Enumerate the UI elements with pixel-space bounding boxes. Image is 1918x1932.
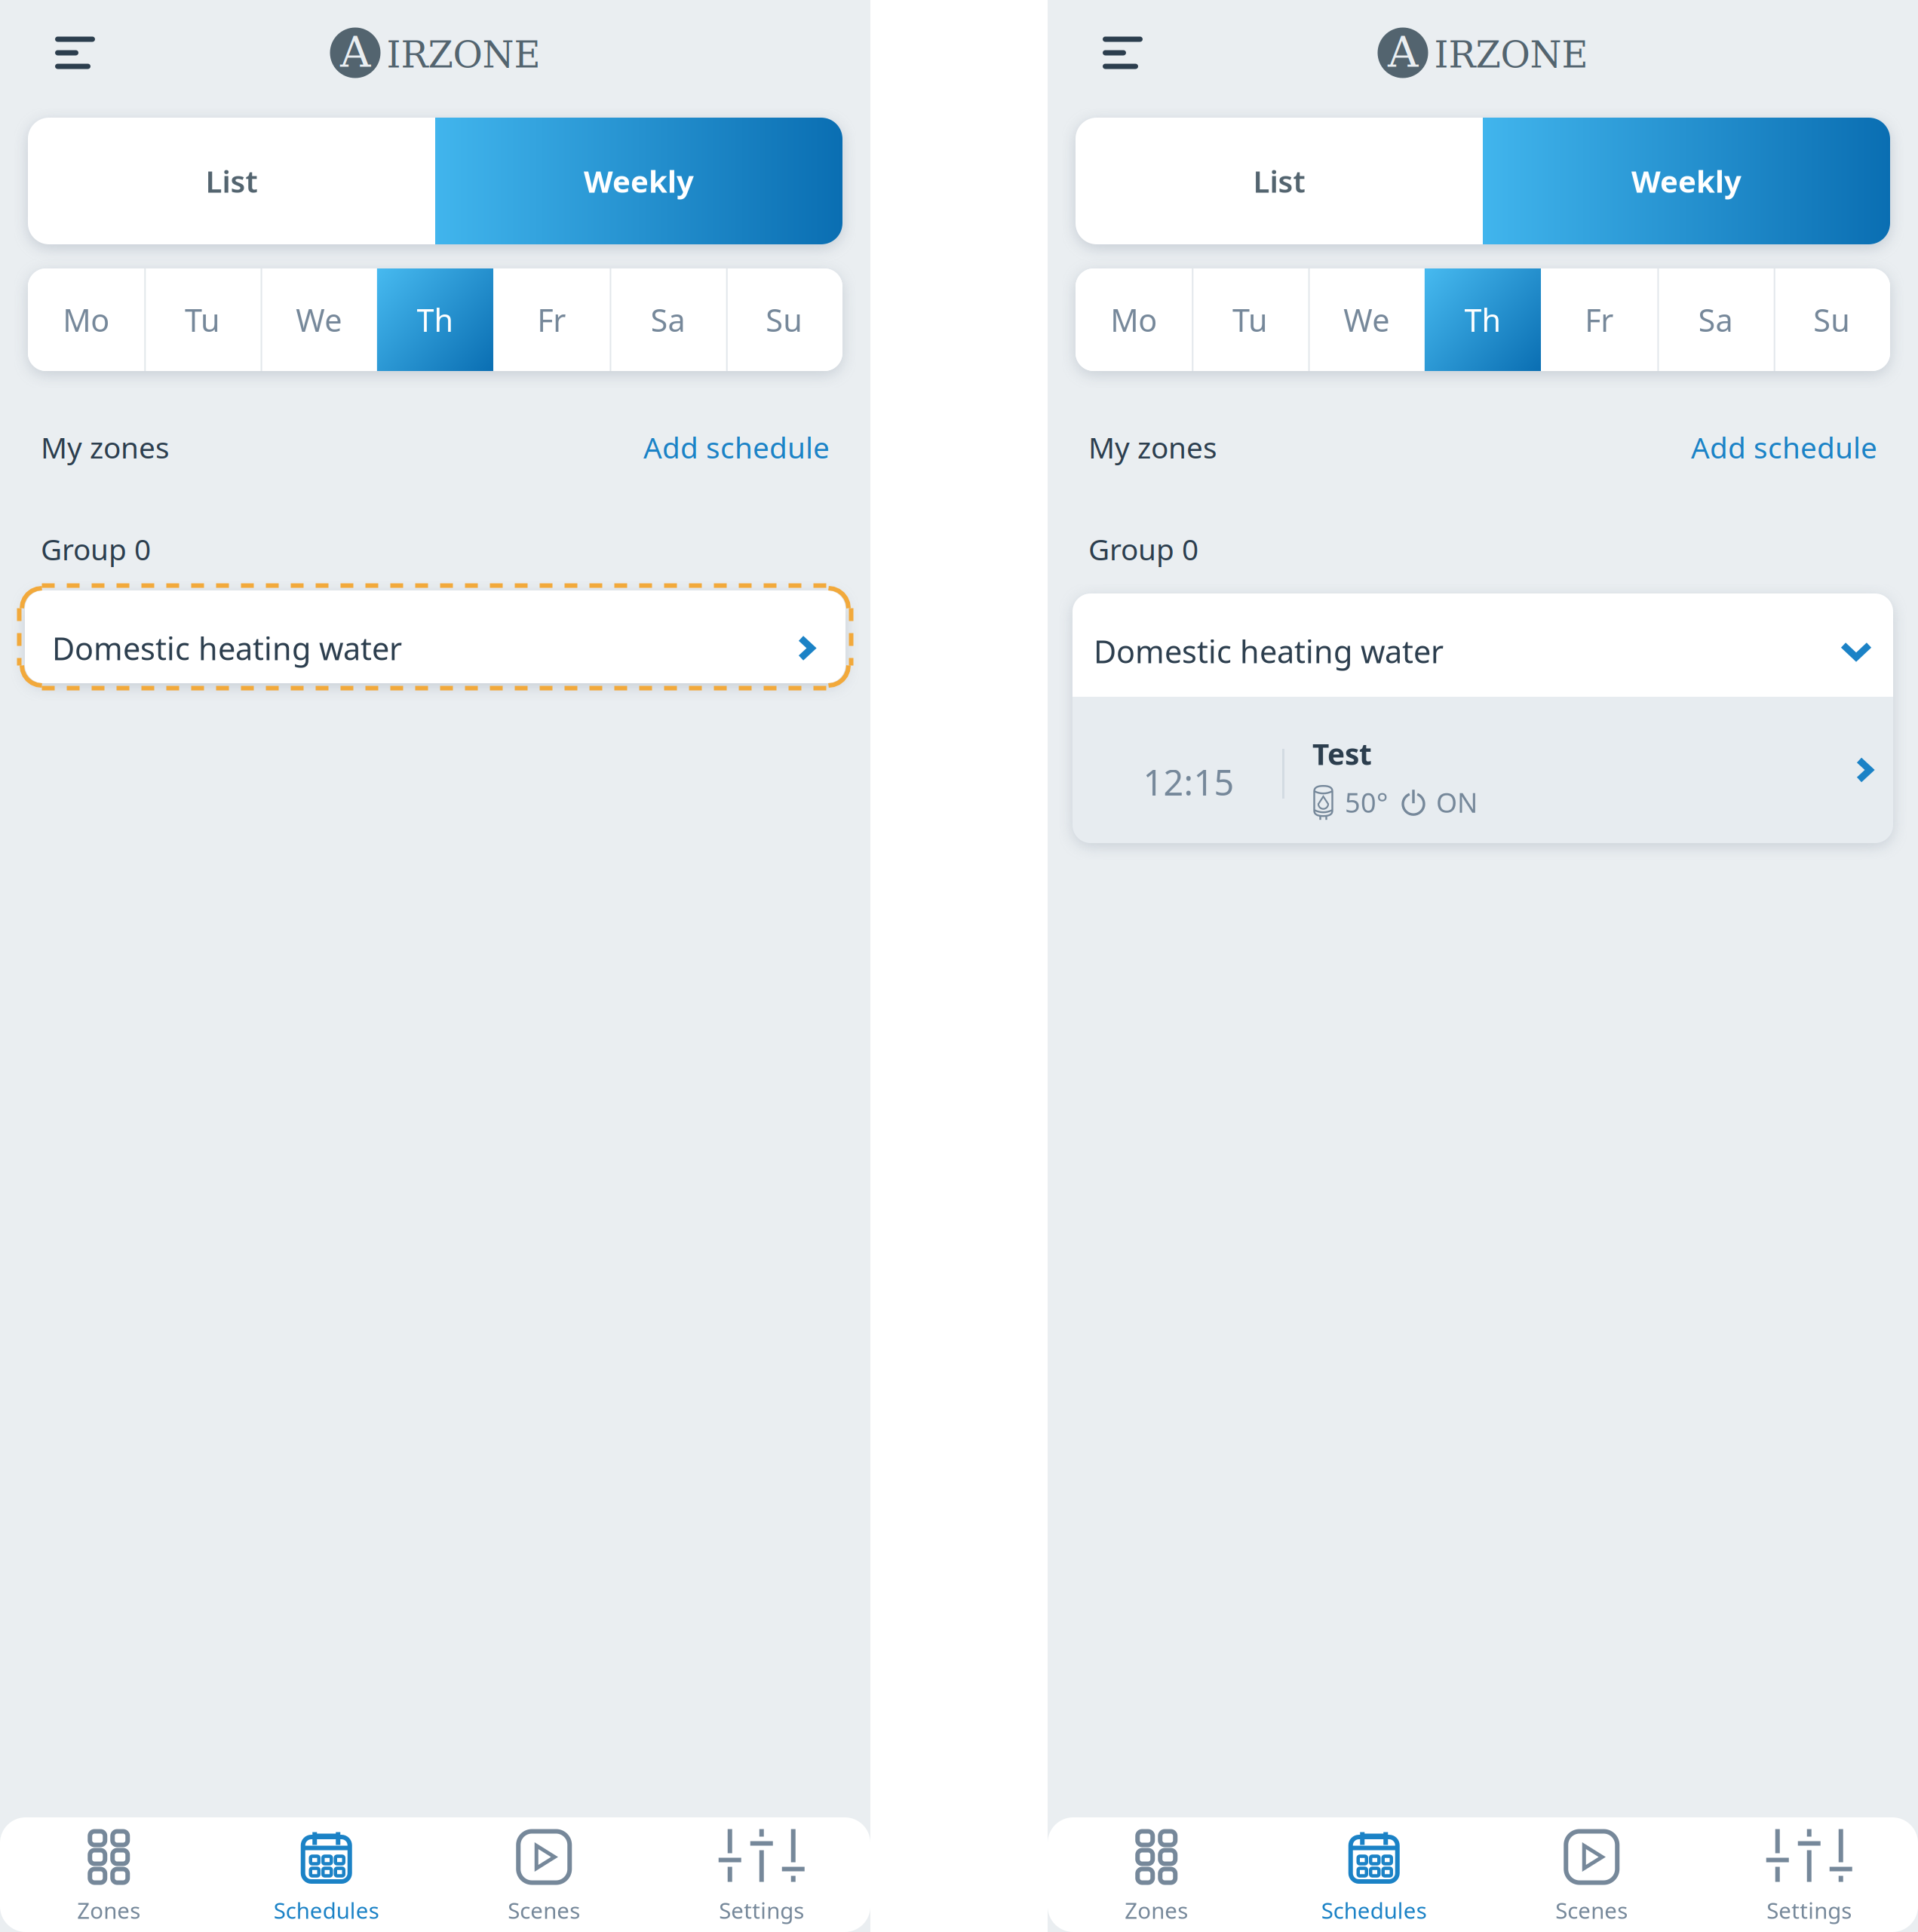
button[interactable]: Schedules <box>1265 1829 1483 1925</box>
staticText: Zones <box>77 1895 140 1925</box>
staticText: Domestic heating water <box>52 627 402 669</box>
button[interactable]: Th <box>1425 268 1541 371</box>
staticText: Weekly <box>584 161 694 201</box>
button[interactable]: Weekly <box>1483 118 1890 244</box>
staticText: Zones <box>1125 1895 1188 1925</box>
staticText: Mo <box>63 299 109 340</box>
button[interactable]: Mo <box>28 268 144 371</box>
staticText: Su <box>766 299 803 340</box>
staticText: Scenes <box>508 1895 580 1925</box>
staticText: Sa <box>651 299 685 340</box>
button[interactable]: List <box>28 118 435 244</box>
staticText: Tu <box>185 299 220 340</box>
staticText: IRZONE <box>387 34 540 76</box>
button[interactable]: Domestic heating water <box>1073 593 1893 697</box>
staticText: We <box>296 299 342 340</box>
staticText: IRZONE <box>1434 34 1588 76</box>
button[interactable]: Settings <box>1700 1829 1918 1925</box>
button[interactable]: We <box>261 268 377 371</box>
staticText: Domestic heating water <box>1094 631 1444 672</box>
staticText: Test <box>1312 734 1372 773</box>
button[interactable]: Fr <box>493 268 610 371</box>
button[interactable]: 12:15 <box>1073 697 1893 843</box>
staticText: Sa <box>1698 299 1733 340</box>
button[interactable]: Add schedule <box>1691 428 1877 466</box>
staticText: A <box>340 27 370 77</box>
button[interactable]: Tu <box>1192 268 1308 371</box>
button[interactable]: List <box>1076 118 1483 244</box>
staticText: Add schedule <box>1691 428 1877 466</box>
staticText: My zones <box>1088 428 1217 466</box>
staticText: List <box>206 161 258 201</box>
staticText: Tu <box>1232 299 1268 340</box>
staticText: We <box>1343 299 1389 340</box>
staticText: Th <box>417 299 454 340</box>
staticText: List <box>1253 161 1305 201</box>
button[interactable]: Mo <box>1076 268 1192 371</box>
button[interactable]: Fr <box>1541 268 1657 371</box>
staticText: Mo <box>1110 299 1157 340</box>
button[interactable]: Tu <box>144 268 261 371</box>
staticText: ON <box>1436 784 1478 820</box>
staticText: 50° <box>1345 784 1388 820</box>
button[interactable]: Zones <box>1048 1829 1265 1925</box>
button[interactable]: Domestic heating water <box>25 590 845 683</box>
staticText: Add schedule <box>643 428 830 466</box>
staticText: Settings <box>719 1895 804 1925</box>
staticText: Fr <box>537 299 566 340</box>
button[interactable]: Weekly <box>435 118 842 244</box>
staticText: Su <box>1813 299 1850 340</box>
button[interactable]: Th <box>377 268 493 371</box>
button[interactable]: Su <box>726 268 842 371</box>
staticText: Schedules <box>274 1895 379 1925</box>
button[interactable]: Zones <box>0 1829 218 1925</box>
staticText: Scenes <box>1555 1895 1628 1925</box>
staticText: 12:15 <box>1143 759 1234 805</box>
button[interactable]: Menu <box>1103 38 1143 67</box>
button[interactable]: Scenes <box>435 1829 653 1925</box>
button[interactable]: Sa <box>610 268 726 371</box>
button[interactable]: Schedules <box>218 1829 435 1925</box>
staticText: Group 0 <box>1088 530 1198 568</box>
staticText: A <box>1388 27 1418 77</box>
button[interactable]: Su <box>1774 268 1890 371</box>
staticText: Th <box>1464 299 1501 340</box>
staticText: Group 0 <box>41 530 151 568</box>
staticText: Weekly <box>1631 161 1742 201</box>
button[interactable]: Sa <box>1657 268 1774 371</box>
staticText: Schedules <box>1321 1895 1427 1925</box>
button[interactable]: Add schedule <box>643 428 830 466</box>
staticText: My zones <box>41 428 170 466</box>
staticText: Settings <box>1767 1895 1852 1925</box>
button[interactable]: Settings <box>653 1829 870 1925</box>
button[interactable]: Menu <box>55 38 95 67</box>
staticText: Fr <box>1585 299 1614 340</box>
button[interactable]: We <box>1308 268 1425 371</box>
button[interactable]: Scenes <box>1483 1829 1700 1925</box>
